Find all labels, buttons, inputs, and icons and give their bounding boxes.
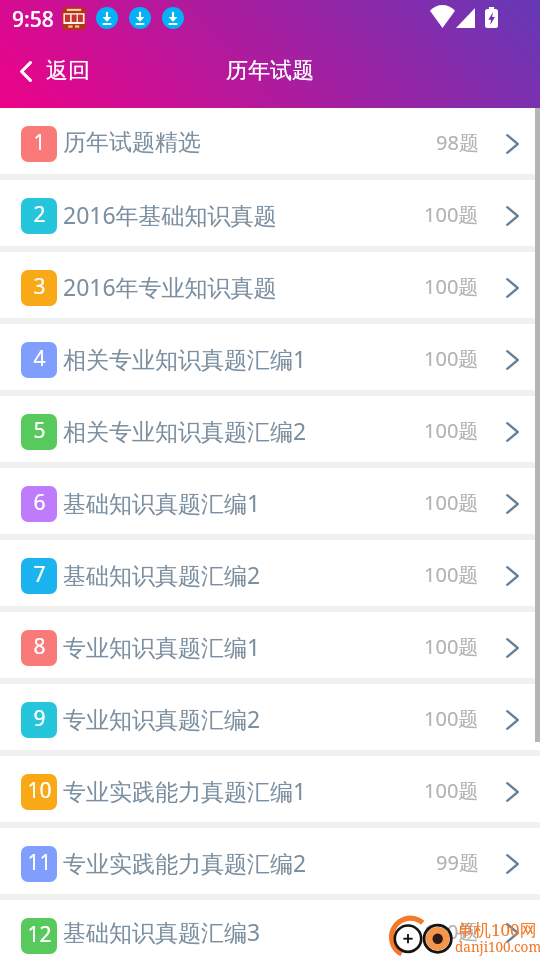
staticText: 100题 — [424, 561, 479, 588]
staticText: 8 — [33, 632, 46, 661]
button[interactable]: 返回 — [0, 47, 108, 95]
staticText: 基础知识真题汇编3 — [63, 916, 261, 947]
staticText: 历年试题精选 — [63, 128, 201, 157]
staticText: 专业知识真题汇编2 — [63, 703, 261, 734]
button[interactable]: 8 — [0, 612, 540, 678]
staticText: 2 — [33, 200, 46, 229]
button[interactable]: 11 — [0, 828, 540, 894]
staticText: 2016年基础知识真题 — [63, 199, 277, 230]
other: Download — [162, 7, 184, 29]
button[interactable]: 10 — [0, 756, 540, 822]
staticText: 1 — [33, 128, 46, 157]
staticText: 100题 — [424, 918, 479, 945]
staticText: 返回 — [46, 57, 90, 85]
staticText: 历年试题 — [226, 57, 314, 85]
staticText: 专业实践能力真题汇编2 — [63, 847, 307, 878]
staticText: 相关专业知识真题汇编1 — [63, 343, 307, 374]
staticText: 100题 — [424, 777, 479, 804]
staticText: 基础知识真题汇编1 — [63, 487, 261, 518]
staticText: 12 — [27, 920, 52, 949]
staticText: 5 — [33, 416, 46, 445]
button[interactable]: 1 — [0, 108, 540, 174]
staticText: 100题 — [424, 201, 479, 228]
staticText: 2016年专业知识真题 — [63, 271, 277, 302]
staticText: 99题 — [436, 849, 479, 876]
button[interactable]: 12 — [0, 900, 540, 960]
staticText: 100题 — [424, 273, 479, 300]
staticText: 9 — [33, 704, 46, 733]
staticText: 专业知识真题汇编1 — [63, 631, 261, 662]
staticText: 专业实践能力真题汇编1 — [63, 775, 307, 806]
staticText: 100题 — [424, 345, 479, 372]
other: Download — [129, 7, 151, 29]
staticText: 100题 — [424, 489, 479, 516]
staticText: 100题 — [424, 705, 479, 732]
staticText: 4 — [33, 344, 46, 373]
button[interactable]: 4 — [0, 324, 540, 390]
staticText: 98题 — [436, 129, 479, 156]
button[interactable]: 7 — [0, 540, 540, 606]
staticText: 10 — [27, 776, 52, 805]
button[interactable]: 3 — [0, 252, 540, 318]
staticText: 6 — [33, 488, 46, 517]
staticText: 相关专业知识真题汇编2 — [63, 415, 307, 446]
button[interactable]: 9 — [0, 684, 540, 750]
button[interactable]: 5 — [0, 396, 540, 462]
staticText: 11 — [27, 848, 52, 877]
staticText: 100题 — [424, 633, 479, 660]
staticText: danji100.com — [455, 938, 540, 956]
other: Download — [96, 7, 118, 29]
staticText: 9:58 — [12, 5, 54, 34]
staticText: 7 — [33, 560, 46, 589]
button[interactable]: 6 — [0, 468, 540, 534]
staticText: 3 — [33, 272, 46, 301]
staticText: 单机100网 — [457, 918, 537, 941]
button[interactable]: 2 — [0, 180, 540, 246]
staticText: 100题 — [424, 417, 479, 444]
staticText: 基础知识真题汇编2 — [63, 559, 261, 590]
